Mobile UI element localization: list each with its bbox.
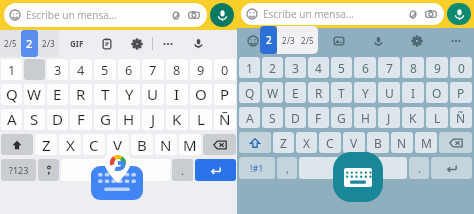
button[interactable]: T xyxy=(331,82,352,103)
button[interactable]: gif xyxy=(62,30,92,57)
button[interactable]: O xyxy=(426,82,448,103)
button[interactable]: 9 xyxy=(426,57,448,78)
button[interactable]: Voice message xyxy=(210,3,234,27)
button[interactable]: Shift xyxy=(1,134,33,155)
button[interactable]: D xyxy=(47,109,68,130)
button[interactable]: R xyxy=(70,84,92,105)
button[interactable]: Stickers xyxy=(327,28,351,54)
button[interactable]: 2 xyxy=(277,26,318,54)
button[interactable]: Clipboard xyxy=(92,30,122,57)
button[interactable]: M xyxy=(415,132,437,153)
button[interactable]: K xyxy=(402,107,424,128)
button[interactable]: 2 xyxy=(260,26,277,54)
button[interactable]: Voice message xyxy=(447,3,471,25)
button[interactable]: U xyxy=(378,82,400,103)
button[interactable]: Period xyxy=(409,157,429,179)
button[interactable]: Voice input xyxy=(366,28,390,54)
button[interactable]: Emoji xyxy=(241,28,265,54)
button[interactable]: 2 xyxy=(262,57,283,78)
button[interactable]: E xyxy=(47,84,68,105)
button[interactable]: W xyxy=(262,82,283,103)
button[interactable]: 4 xyxy=(308,57,329,78)
button[interactable]: O xyxy=(190,84,212,105)
button[interactable]: !#1 xyxy=(239,157,275,179)
button[interactable]: 1 xyxy=(1,59,22,80)
button[interactable]: I xyxy=(402,82,424,103)
button[interactable]: Space xyxy=(299,157,407,179)
button[interactable]: A xyxy=(239,107,260,128)
button[interactable]: W xyxy=(24,84,45,105)
button[interactable]: 2 xyxy=(21,30,38,57)
button[interactable]: 7 xyxy=(142,59,164,80)
button[interactable]: Enter xyxy=(195,159,236,181)
button[interactable]: 6 xyxy=(118,59,140,80)
button[interactable]: C xyxy=(83,134,105,155)
button[interactable]: Comma xyxy=(38,159,59,181)
button[interactable]: 3 xyxy=(47,59,68,80)
button[interactable]: Voice input xyxy=(183,30,213,57)
button[interactable]: 9 xyxy=(190,59,212,80)
button[interactable]: S xyxy=(262,107,283,128)
button[interactable]: H xyxy=(118,109,140,130)
button[interactable]: 3 xyxy=(285,57,306,78)
button[interactable]: Space xyxy=(61,159,170,181)
button[interactable]: Settings xyxy=(122,30,152,57)
button[interactable]: V xyxy=(343,132,365,153)
button[interactable]: Period xyxy=(172,159,193,181)
button[interactable]: G xyxy=(94,109,116,130)
button[interactable]: 5 xyxy=(331,57,352,78)
button[interactable]: X xyxy=(296,132,317,153)
button[interactable]: B xyxy=(367,132,389,153)
button[interactable]: Z xyxy=(273,132,294,153)
button[interactable]: Backspace xyxy=(203,134,236,155)
button[interactable]: E xyxy=(285,82,306,103)
button[interactable]: L xyxy=(426,107,448,128)
button[interactable]: N xyxy=(155,134,177,155)
button[interactable]: 5 xyxy=(94,59,116,80)
button[interactable]: Z xyxy=(35,134,57,155)
button[interactable]: J xyxy=(378,107,400,128)
button[interactable]: I xyxy=(166,84,188,105)
button[interactable]: P xyxy=(450,82,472,103)
button[interactable]: V xyxy=(107,134,129,155)
button[interactable]: F xyxy=(70,109,92,130)
button[interactable]: 2 xyxy=(0,30,21,57)
button[interactable]: Comma xyxy=(277,157,297,179)
button[interactable]: Settings xyxy=(405,28,429,54)
button[interactable]: Escribe un mensa... xyxy=(241,3,444,25)
button[interactable]: 0 xyxy=(450,57,472,78)
button[interactable]: More options xyxy=(153,30,183,57)
button[interactable]: S xyxy=(24,109,45,130)
button[interactable]: 6 xyxy=(354,57,376,78)
button[interactable]: A xyxy=(1,109,22,130)
button[interactable]: C xyxy=(319,132,341,153)
button[interactable]: Ñ xyxy=(450,107,472,128)
button[interactable]: H xyxy=(354,107,376,128)
button[interactable] xyxy=(24,59,45,80)
button[interactable]: ?123 xyxy=(1,159,36,181)
button[interactable]: P xyxy=(214,84,236,105)
button[interactable]: N xyxy=(391,132,413,153)
button[interactable]: U xyxy=(142,84,164,105)
button[interactable]: 1 xyxy=(239,57,260,78)
button[interactable]: Enter xyxy=(431,157,472,179)
button[interactable]: D xyxy=(285,107,306,128)
button[interactable]: G xyxy=(331,107,352,128)
button[interactable]: Keyboard app xyxy=(333,152,383,202)
button[interactable]: Y xyxy=(118,84,140,105)
button[interactable]: Ñ xyxy=(214,109,236,130)
button[interactable]: T xyxy=(94,84,116,105)
button[interactable]: R xyxy=(308,82,329,103)
button[interactable]: Shift xyxy=(239,132,271,153)
button[interactable]: Q xyxy=(239,82,260,103)
button[interactable]: M xyxy=(179,134,201,155)
button[interactable]: 8 xyxy=(166,59,188,80)
button[interactable]: More options xyxy=(444,28,468,54)
button[interactable]: Backspace xyxy=(439,132,472,153)
button[interactable]: F xyxy=(308,107,329,128)
button[interactable]: Q xyxy=(1,84,22,105)
button[interactable]: X xyxy=(59,134,81,155)
button[interactable]: 7 xyxy=(378,57,400,78)
button[interactable]: K xyxy=(166,109,188,130)
button[interactable]: 2 xyxy=(38,30,59,57)
